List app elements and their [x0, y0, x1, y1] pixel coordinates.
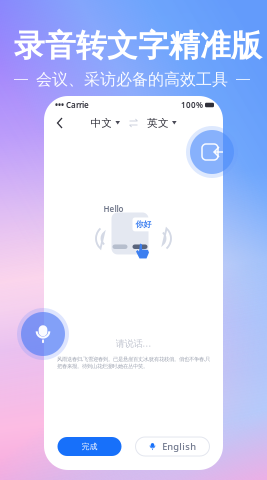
- staticText: 录音转文字精准版: [14, 27, 262, 65]
- staticText: English: [162, 440, 196, 453]
- staticText: 中文: [90, 116, 112, 129]
- button[interactable]: 完成: [57, 437, 121, 456]
- staticText: 你好: [135, 219, 151, 229]
- button[interactable]: English: [135, 437, 209, 456]
- staticText: •••: [55, 100, 64, 110]
- staticText: 风雨送春归,飞雪迎春到。已是悬崖百丈冰,犹有花枝俏。俏也不争春,只把春来报。待到…: [57, 355, 210, 370]
- button[interactable]: 中文: [89, 116, 121, 129]
- staticText: 完成: [81, 442, 97, 451]
- button[interactable]: Back: [52, 114, 68, 132]
- staticText: 会议、采访必备的高效工具: [36, 70, 228, 89]
- staticText: 100%: [181, 100, 203, 110]
- staticText: 英文: [147, 116, 169, 129]
- button[interactable]: Export: [186, 126, 238, 178]
- staticText: Carrie: [64, 100, 89, 110]
- button[interactable]: Record: [17, 308, 69, 360]
- button[interactable]: 英文: [146, 116, 178, 129]
- staticText: Hello: [103, 203, 123, 214]
- staticText: 请说话...: [115, 337, 151, 349]
